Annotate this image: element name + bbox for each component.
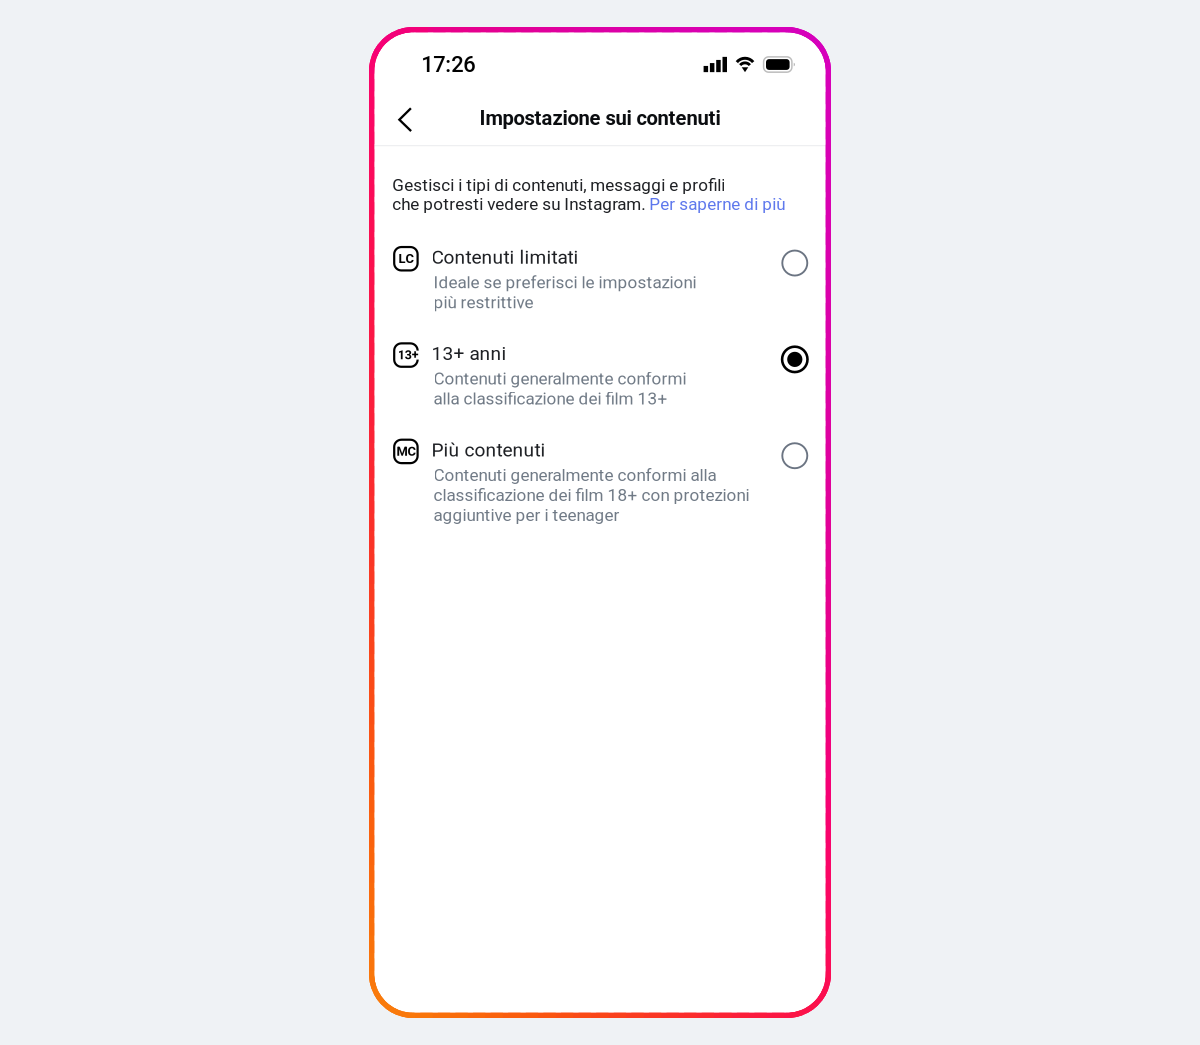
staticText: 17:26 (421, 52, 475, 77)
staticText: Impostazione sui contenuti (479, 106, 720, 130)
staticText: Contenuti generalmente conformi alla cla… (434, 369, 687, 409)
staticText: Più contenuti (432, 439, 546, 461)
button[interactable]: LC (374, 228, 826, 324)
staticText: Contenuti generalmente conformi alla cla… (434, 465, 750, 525)
staticText: che potresti vedere su Instagram. (392, 194, 649, 214)
staticText: 13+ anni (432, 342, 507, 365)
staticText: MC (396, 444, 415, 459)
staticText: 13+ (398, 348, 419, 362)
staticText: Per saperne di più (649, 194, 785, 214)
staticText: Ideale se preferisci le impostazioni più… (434, 272, 697, 312)
staticText: LC (398, 251, 413, 266)
button[interactable]: Back (385, 92, 425, 144)
staticText: Contenuti limitati (432, 246, 579, 268)
button[interactable]: 13+ (374, 324, 826, 421)
staticText: Gestisci i tipi di contenuti, messaggi e… (392, 175, 725, 195)
button[interactable]: Per saperne di più (649, 194, 785, 214)
button[interactable]: MC (374, 421, 826, 537)
